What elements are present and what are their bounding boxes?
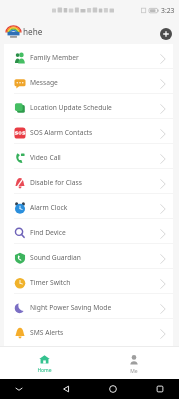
button[interactable]: Disable for Class <box>4 169 173 194</box>
button[interactable]: Add <box>160 28 172 40</box>
button[interactable]: Video Call <box>4 144 173 169</box>
staticText: Message <box>30 78 58 87</box>
staticText: Find Device <box>30 228 66 237</box>
button[interactable]: Alarm Clock <box>4 194 173 219</box>
staticText: SOS Alarm Contacts <box>30 128 93 137</box>
staticText: Me <box>130 368 138 375</box>
staticText: Disable for Class <box>30 178 82 187</box>
button[interactable]: Home <box>0 346 89 379</box>
button[interactable]: Me <box>89 346 179 379</box>
button[interactable]: Message <box>4 69 173 94</box>
staticText: hehe <box>23 26 43 37</box>
staticText: Home <box>37 367 52 374</box>
button[interactable]: Recent apps <box>152 381 168 397</box>
button[interactable]: Night Power Saving Mode <box>4 294 173 319</box>
staticText: Sound Guardian <box>30 253 81 262</box>
staticText: Night Power Saving Mode <box>30 303 112 312</box>
staticText: Timer Switch <box>30 278 71 287</box>
button[interactable]: Home <box>105 381 121 397</box>
staticText: 3:23 <box>161 6 175 15</box>
staticText: Alarm Clock <box>30 203 68 212</box>
button[interactable]: SMS Alerts <box>4 319 173 344</box>
button[interactable]: Find Device <box>4 219 173 244</box>
button[interactable]: SOS Alarm Contacts <box>4 119 173 144</box>
staticText: SMS Alerts <box>30 328 64 337</box>
button[interactable]: Location Update Schedule <box>4 94 173 119</box>
button[interactable]: Hide keyboard <box>11 381 27 397</box>
button[interactable]: Timer Switch <box>4 269 173 294</box>
button[interactable]: Sound Guardian <box>4 244 173 269</box>
button[interactable]: Back <box>58 381 74 397</box>
staticText: Location Update Schedule <box>30 103 112 112</box>
button[interactable]: Family Member <box>4 44 173 69</box>
staticText: Video Call <box>30 153 61 162</box>
staticText: Family Member <box>30 53 79 62</box>
